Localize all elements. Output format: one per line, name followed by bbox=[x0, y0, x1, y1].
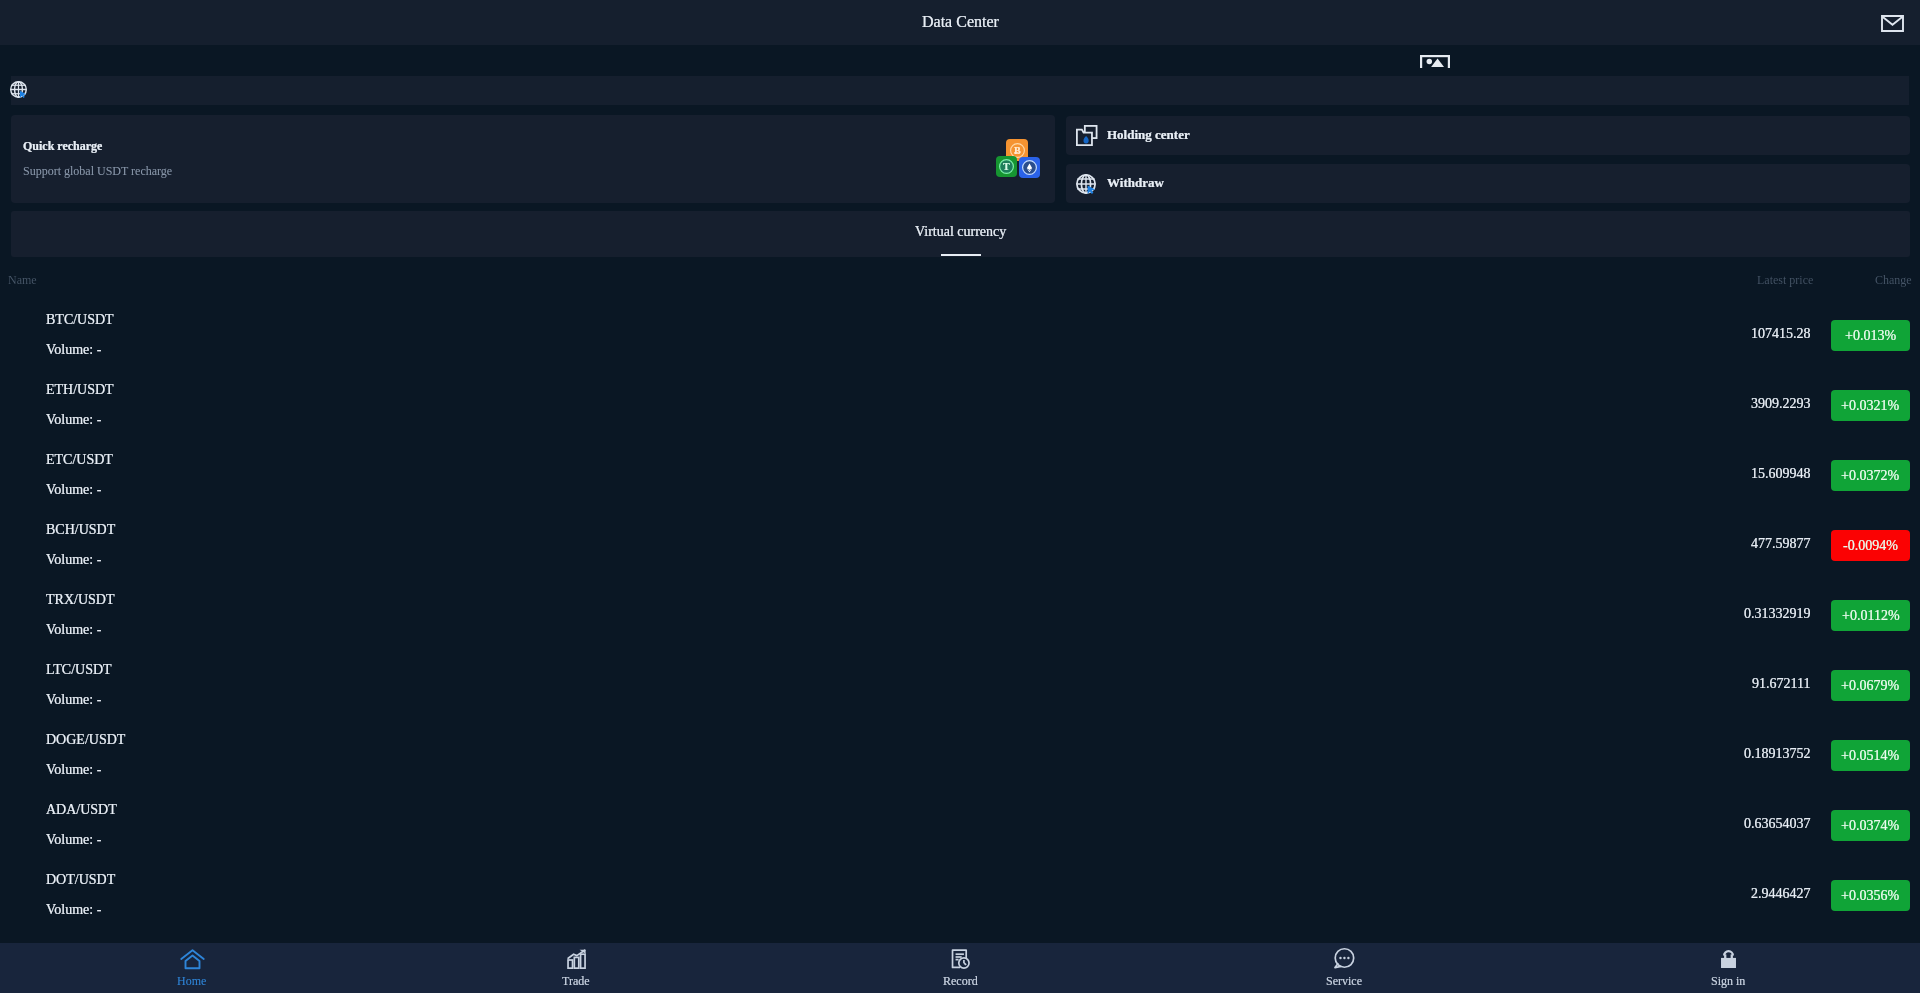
button[interactable]: TRX/USDT bbox=[0, 580, 1920, 650]
button[interactable]: Quick recharge bbox=[11, 115, 1055, 203]
staticText: Latest price bbox=[1757, 273, 1814, 286]
button[interactable]: Sign in bbox=[1536, 943, 1920, 993]
staticText: +0.013% bbox=[1845, 328, 1897, 344]
staticText: LTC/USDT bbox=[46, 662, 112, 678]
button[interactable]: Holding center bbox=[1066, 116, 1910, 155]
staticText: +0.0112% bbox=[1842, 608, 1900, 624]
staticText: Sign in bbox=[1711, 974, 1746, 987]
staticText: ETC/USDT bbox=[46, 452, 113, 468]
staticText: -0.0094% bbox=[1843, 538, 1898, 554]
staticText: Volume: - bbox=[46, 692, 102, 708]
staticText: 15.609948 bbox=[1751, 466, 1811, 482]
staticText: Data Center bbox=[922, 13, 999, 31]
staticText: Trade bbox=[562, 974, 590, 987]
staticText: 0.63654037 bbox=[1744, 816, 1811, 832]
staticText: Virtual currency bbox=[915, 224, 1007, 240]
button[interactable]: DOT/USDT bbox=[0, 860, 1920, 930]
button[interactable]: Messages bbox=[1873, 7, 1911, 39]
staticText: T bbox=[1003, 161, 1010, 172]
staticText: DOT/USDT bbox=[46, 872, 116, 888]
staticText: 0.18913752 bbox=[1744, 746, 1811, 762]
button[interactable]: Withdraw bbox=[1066, 164, 1910, 203]
staticText: Holding center bbox=[1107, 127, 1190, 141]
button[interactable]: Language bbox=[11, 76, 1909, 105]
staticText: +0.0356% bbox=[1841, 888, 1900, 904]
button[interactable]: BCH/USDT bbox=[0, 510, 1920, 580]
button[interactable]: Record bbox=[768, 943, 1152, 993]
staticText: 477.59877 bbox=[1751, 536, 1811, 552]
staticText: Quick recharge bbox=[23, 139, 103, 152]
staticText: BTC/USDT bbox=[46, 312, 114, 328]
button[interactable]: DOGE/USDT bbox=[0, 720, 1920, 790]
staticText: DOGE/USDT bbox=[46, 732, 126, 748]
staticText: Home bbox=[177, 974, 207, 987]
staticText: Volume: - bbox=[46, 552, 102, 568]
button[interactable]: LTC/USDT bbox=[0, 650, 1920, 720]
button[interactable]: Virtual currency bbox=[896, 211, 1026, 257]
button[interactable]: Service bbox=[1152, 943, 1536, 993]
staticText: Name bbox=[8, 273, 37, 286]
staticText: Volume: - bbox=[46, 902, 102, 918]
staticText: Withdraw bbox=[1107, 175, 1164, 189]
staticText: Service bbox=[1326, 974, 1362, 987]
button[interactable]: BTC/USDT bbox=[0, 300, 1920, 370]
staticText: Volume: - bbox=[46, 832, 102, 848]
button[interactable]: ADA/USDT bbox=[0, 790, 1920, 860]
staticText: 3909.2293 bbox=[1751, 396, 1811, 412]
staticText: +0.0374% bbox=[1841, 818, 1900, 834]
staticText: ADA/USDT bbox=[46, 802, 117, 818]
staticText: Volume: - bbox=[46, 482, 102, 498]
button[interactable]: Trade bbox=[384, 943, 768, 993]
staticText: 2.9446427 bbox=[1751, 886, 1811, 902]
staticText: Volume: - bbox=[46, 342, 102, 358]
staticText: Volume: - bbox=[46, 412, 102, 428]
staticText: +0.0372% bbox=[1841, 468, 1900, 484]
staticText: ETH/USDT bbox=[46, 382, 114, 398]
staticText: 107415.28 bbox=[1751, 326, 1811, 342]
staticText: +0.0679% bbox=[1841, 678, 1900, 694]
staticText: Support global USDT recharge bbox=[23, 164, 173, 177]
staticText: Volume: - bbox=[46, 622, 102, 638]
button[interactable]: ETC/USDT bbox=[0, 440, 1920, 510]
staticText: Record bbox=[943, 974, 978, 987]
staticText: +0.0321% bbox=[1841, 398, 1900, 414]
staticText: +0.0514% bbox=[1841, 748, 1900, 764]
staticText: TRX/USDT bbox=[46, 592, 115, 608]
staticText: 91.672111 bbox=[1752, 676, 1811, 692]
staticText: Volume: - bbox=[46, 762, 102, 778]
staticText: Ƀ bbox=[1014, 145, 1021, 156]
staticText: Change bbox=[1875, 273, 1912, 286]
staticText: BCH/USDT bbox=[46, 522, 116, 538]
staticText: 0.31332919 bbox=[1744, 606, 1811, 622]
button[interactable]: Home bbox=[0, 943, 384, 993]
button[interactable]: ETH/USDT bbox=[0, 370, 1920, 440]
